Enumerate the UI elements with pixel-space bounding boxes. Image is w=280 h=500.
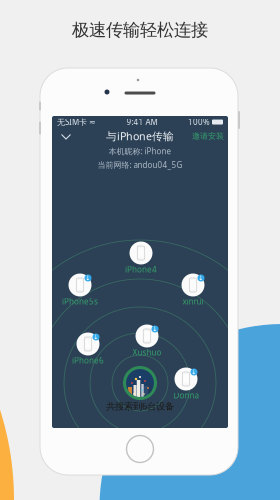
staticText: 与iPhone传输 [106,129,174,143]
button[interactable]: My device [122,365,158,401]
staticText: iPhone5s [62,296,98,307]
staticText: xinrui [182,296,203,307]
staticText: iPhone6 [72,355,104,366]
button[interactable]: ↓ [165,366,207,406]
staticText: 当前网络: andou04_5G [97,159,182,170]
staticText: 共搜索到6台设备 [106,400,174,412]
button[interactable]: ↓ [126,323,168,363]
staticText: ≈ [89,117,96,127]
staticText: Xushuo [132,347,161,358]
button[interactable]: 邀请安装 [192,130,224,142]
staticText: Donna [173,390,198,401]
button[interactable]: ↓ [172,272,214,312]
staticText: ↓ [191,368,197,376]
staticText: 本机昵称: iPhone [108,146,171,156]
button[interactable]: ↓ [67,331,109,371]
button[interactable]: iPhone4 [120,240,162,280]
button[interactable]: Collapse [56,127,76,145]
staticText: 邀请安装 [192,131,224,141]
button[interactable]: ↓ [59,272,101,312]
staticText: 无SIM卡 [57,117,87,127]
staticText: 100% [188,117,210,127]
staticText: ↓ [198,274,204,282]
staticText: iPhone4 [125,264,157,275]
staticText: ↓ [93,333,99,341]
staticText: 9:41 AM [126,117,157,127]
staticText: ↓ [152,325,158,333]
staticText: ↓ [85,274,91,282]
staticText: 极速传输轻松连接 [72,19,208,41]
